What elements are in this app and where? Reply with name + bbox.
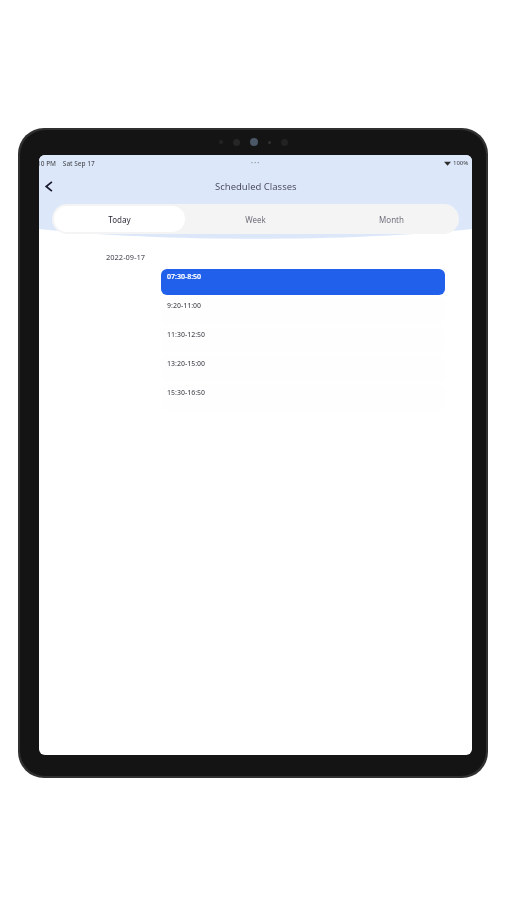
staticText: 2022-09-17 (106, 252, 146, 262)
staticText: Week (245, 214, 266, 225)
button[interactable]: Today (54, 206, 185, 232)
staticText: 13:20-15:00 (167, 359, 206, 369)
staticText: 100% (453, 159, 469, 167)
button[interactable]: 07:30-8:50 (161, 269, 445, 295)
staticText: 07:30-8:50 (167, 272, 202, 282)
staticText: Scheduled Classes (215, 180, 297, 193)
staticText: 11:30-12:50 (167, 330, 206, 340)
staticText: Today (108, 214, 131, 225)
button[interactable]: 15:30-16:50 (161, 385, 445, 411)
button[interactable]: Week (189, 206, 321, 232)
button[interactable]: Back (39, 175, 60, 197)
button[interactable]: 9:20-11:00 (161, 298, 445, 324)
button[interactable]: 11:30-12:50 (161, 327, 445, 353)
staticText: 15:30-16:50 (167, 388, 206, 398)
button[interactable]: Month (325, 206, 457, 232)
staticText: • • • (251, 160, 260, 167)
button[interactable]: 13:20-15:00 (161, 356, 445, 382)
staticText: 10 PM Sat Sep 17 (39, 159, 95, 168)
staticText: Month (379, 214, 404, 225)
staticText: 9:20-11:00 (167, 301, 202, 311)
